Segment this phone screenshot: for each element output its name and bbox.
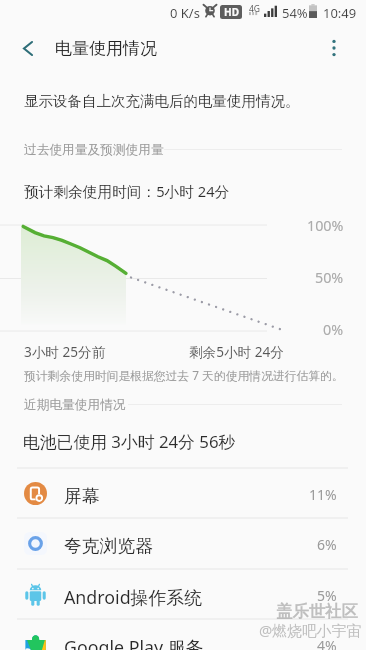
- staticText: 4G: [249, 3, 261, 15]
- staticText: 夸克浏览器: [64, 535, 153, 557]
- button[interactable]: Back: [8, 27, 48, 67]
- staticText: 近期电量使用情况: [24, 397, 126, 413]
- staticText: 5%: [317, 586, 337, 605]
- staticText: 屏幕: [64, 485, 100, 507]
- staticText: 预计剩余使用时间是根据您过去 7 天的使用情况进行估算的。: [24, 367, 344, 383]
- staticText: 0%: [323, 320, 344, 339]
- staticText: 显示设备自上次充满电后的电量使用情况。: [24, 92, 300, 110]
- staticText: 54%: [282, 4, 308, 22]
- staticText: 6%: [317, 535, 337, 554]
- staticText: 盖乐世社区: [276, 601, 358, 622]
- button[interactable]: Google Play 服务: [0, 619, 366, 650]
- staticText: 11%: [309, 485, 337, 504]
- staticText: 50%: [315, 268, 344, 287]
- staticText: 电池已使用 3小时 24分 56秒: [23, 430, 236, 453]
- staticText: 3小时 25分前: [24, 342, 106, 361]
- staticText: 剩余5小时 24分: [189, 342, 284, 361]
- button[interactable]: More options: [314, 27, 354, 67]
- staticText: @燃烧吧小宇宙: [259, 620, 362, 640]
- staticText: 过去使用量及预测使用量: [24, 142, 164, 158]
- staticText: 4%: [317, 636, 337, 650]
- staticText: 100%: [307, 216, 344, 235]
- staticText: Google Play 服务: [64, 635, 204, 650]
- button[interactable]: 屏幕: [0, 468, 366, 519]
- staticText: 10:49: [323, 4, 357, 22]
- staticText: 0 K/s: [170, 4, 200, 22]
- button[interactable]: 夸克浏览器: [0, 518, 366, 569]
- button[interactable]: Android操作系统: [0, 569, 366, 620]
- staticText: 电量使用情况: [55, 38, 157, 59]
- staticText: HD: [224, 5, 239, 19]
- staticText: Android操作系统: [64, 585, 202, 609]
- staticText: 预计剩余使用时间：5小时 24分: [24, 181, 230, 201]
